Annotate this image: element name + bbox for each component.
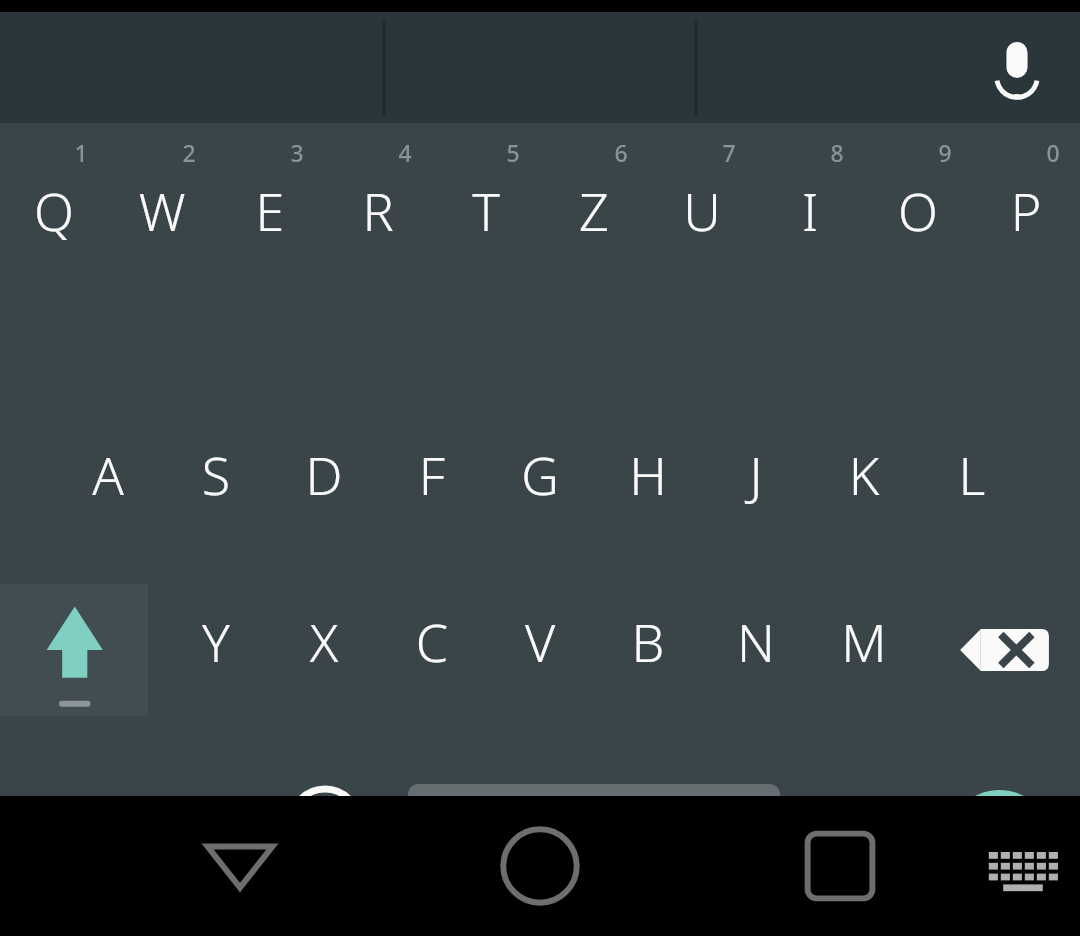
- button[interactable]: Q: [0, 123, 108, 288]
- button[interactable]: O: [864, 123, 972, 288]
- staticText: 3: [243, 137, 351, 168]
- button[interactable]: Change keyboard: [972, 828, 1068, 908]
- staticText: P: [972, 175, 1080, 246]
- button[interactable]: Backspace: [932, 584, 1080, 716]
- staticText: 8: [783, 137, 891, 168]
- button[interactable]: S: [162, 418, 270, 548]
- button[interactable]: Recent apps: [786, 812, 894, 920]
- staticText: S: [162, 439, 270, 510]
- button[interactable]: Hide keyboard: [186, 812, 294, 920]
- button[interactable]: X: [270, 584, 378, 716]
- staticText: R: [324, 175, 432, 246]
- button[interactable]: R: [324, 123, 432, 288]
- button[interactable]: Switch language: [272, 753, 378, 893]
- staticText: O: [864, 175, 972, 246]
- staticText: 1: [27, 137, 135, 168]
- staticText: 5: [459, 137, 567, 168]
- button[interactable]: C: [378, 584, 486, 716]
- staticText: C: [378, 606, 486, 677]
- staticText: L: [918, 439, 1026, 510]
- staticText: Z: [540, 175, 648, 246]
- staticText: F: [378, 439, 486, 510]
- button[interactable]: Voice input: [972, 23, 1062, 113]
- staticText: Y: [162, 606, 270, 677]
- button[interactable]: V: [486, 584, 594, 716]
- button[interactable]: E: [216, 123, 324, 288]
- button[interactable]: K: [810, 418, 918, 548]
- staticText: 0: [999, 137, 1080, 168]
- button[interactable]: G: [486, 418, 594, 548]
- button[interactable]: Enter: [920, 753, 1080, 893]
- staticText: Q: [0, 175, 108, 246]
- button[interactable]: Y: [162, 584, 270, 716]
- staticText: I: [756, 175, 864, 246]
- staticText: U: [648, 175, 756, 246]
- button[interactable]: F: [378, 418, 486, 548]
- button[interactable]: ?123: [0, 753, 160, 893]
- staticText: G: [486, 439, 594, 510]
- button[interactable]: J: [702, 418, 810, 548]
- staticText: T: [432, 175, 540, 246]
- staticText: M: [810, 606, 918, 677]
- button[interactable]: L: [918, 418, 1026, 548]
- staticText: E: [216, 175, 324, 246]
- button[interactable]: Space: [380, 753, 810, 893]
- button[interactable]: A: [54, 418, 162, 548]
- staticText: 4: [351, 137, 459, 168]
- button[interactable]: H: [594, 418, 702, 548]
- staticText: B: [594, 606, 702, 677]
- staticText: D: [270, 439, 378, 510]
- staticText: N: [702, 606, 810, 677]
- button[interactable]: N: [702, 584, 810, 716]
- staticText: 9: [891, 137, 999, 168]
- staticText: .: [812, 795, 918, 863]
- button[interactable]: ,: [162, 753, 272, 893]
- staticText: K: [810, 439, 918, 510]
- button[interactable]: D: [270, 418, 378, 548]
- button[interactable]: Shift: [0, 584, 148, 716]
- button[interactable]: M: [810, 584, 918, 716]
- staticText: A: [54, 439, 162, 510]
- staticText: 2: [135, 137, 243, 168]
- button[interactable]: P: [972, 123, 1080, 288]
- staticText: H: [594, 439, 702, 510]
- button[interactable]: Z: [540, 123, 648, 288]
- staticText: J: [702, 439, 810, 510]
- button[interactable]: I: [756, 123, 864, 288]
- button[interactable]: U: [648, 123, 756, 288]
- staticText: V: [486, 606, 594, 677]
- staticText: X: [270, 606, 378, 677]
- staticText: 7: [675, 137, 783, 168]
- button[interactable]: B: [594, 584, 702, 716]
- staticText: 6: [567, 137, 675, 168]
- button[interactable]: .: [812, 753, 918, 893]
- button[interactable]: Home: [486, 812, 594, 920]
- staticText: ,: [162, 791, 272, 859]
- staticText: W: [108, 175, 216, 246]
- button[interactable]: W: [108, 123, 216, 288]
- button[interactable]: T: [432, 123, 540, 288]
